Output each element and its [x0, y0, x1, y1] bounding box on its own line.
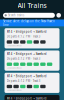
staticText: Last updated 2 min ago	[7, 89, 22, 91]
button[interactable]	[27, 40, 32, 44]
staticText: All Trains	[17, 1, 46, 10]
staticText: M14 • Bridgeport → Stamford	[7, 97, 47, 100]
button[interactable]	[20, 62, 25, 66]
button[interactable]	[13, 62, 19, 66]
staticText: Last updated 2 min ago	[7, 67, 22, 69]
staticText: Departs 4:12 PM · Track 3	[7, 79, 41, 83]
staticText: Departs 4:12 PM · Track 3	[7, 57, 41, 60]
staticText: Last updated 2 min ago	[7, 45, 22, 47]
button[interactable]: M14 • Bridgeport → Stamford	[4, 73, 59, 93]
button[interactable]	[7, 85, 12, 88]
button[interactable]	[47, 62, 52, 66]
button[interactable]	[7, 62, 12, 66]
button[interactable]: M14 • Bridgeport → Stamford	[4, 95, 59, 100]
button[interactable]: M14 • Bridgeport → Stamford	[4, 50, 59, 71]
button[interactable]	[40, 62, 46, 66]
button[interactable]	[33, 40, 39, 44]
staticText: M14 • Bridgeport → Stamford	[7, 30, 47, 33]
staticText: Departs 4:12 PM · Track 3	[7, 35, 41, 38]
staticText: Service alert: delays on the New Haven l…	[3, 20, 55, 27]
button[interactable]	[33, 85, 39, 88]
button[interactable]	[27, 62, 32, 66]
button[interactable]	[13, 40, 19, 44]
button[interactable]: M14 • Bridgeport → Stamford	[4, 28, 59, 48]
button[interactable]	[33, 62, 39, 66]
button[interactable]	[20, 85, 25, 88]
button[interactable]	[7, 40, 12, 44]
button[interactable]	[13, 85, 19, 88]
button[interactable]: Search trains	[3, 13, 55, 18]
button[interactable]	[40, 40, 46, 44]
staticText: Search trains	[8, 13, 24, 17]
button[interactable]	[40, 85, 46, 88]
button[interactable]: Profile	[56, 13, 61, 18]
staticText: M14 • Bridgeport → Stamford	[7, 52, 47, 56]
button[interactable]	[20, 40, 25, 44]
staticText: M14 • Bridgeport → Stamford	[7, 74, 47, 78]
